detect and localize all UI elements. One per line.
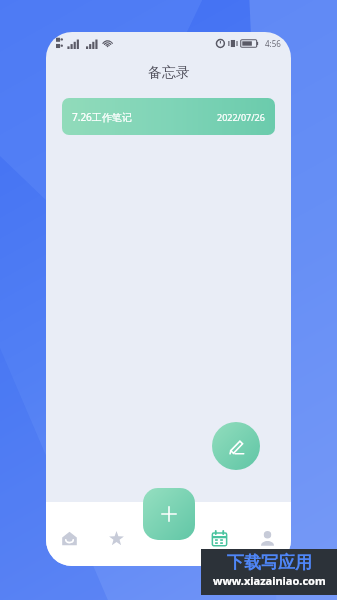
button[interactable]: Favorites bbox=[93, 510, 140, 566]
button[interactable]: 7.26工作笔记 bbox=[62, 98, 275, 135]
button[interactable]: Calendar bbox=[195, 510, 243, 566]
staticText: 下载写应用 bbox=[227, 552, 312, 573]
staticText: 2022/07/26 bbox=[217, 111, 265, 123]
button[interactable]: Add note bbox=[143, 488, 195, 540]
button[interactable]: New note bbox=[212, 422, 260, 470]
button[interactable]: Home bbox=[46, 510, 93, 566]
staticText: 备忘录 bbox=[148, 64, 190, 82]
staticText: 7.26工作笔记 bbox=[72, 110, 132, 124]
button[interactable]: Profile bbox=[243, 510, 291, 566]
staticText: 4:56 bbox=[265, 38, 281, 49]
staticText: www.xiazainiao.com bbox=[213, 573, 326, 588]
